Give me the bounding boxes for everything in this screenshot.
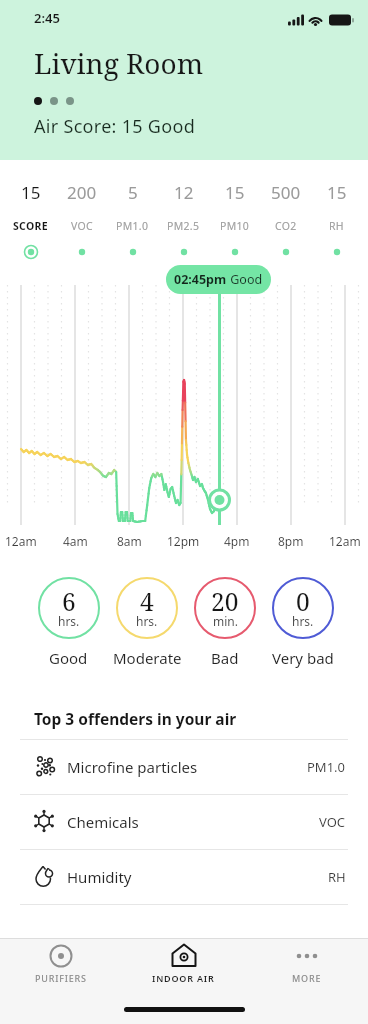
staticText: 5 (128, 181, 138, 204)
staticText: 15 (327, 181, 347, 204)
staticText: Chemicals (67, 812, 139, 832)
staticText: Very bad (272, 648, 334, 668)
staticText: CO2 (275, 219, 297, 233)
staticText: 02:45pm (174, 271, 227, 288)
staticText: PM2.5 (167, 219, 200, 233)
staticText: SCORE (13, 219, 48, 233)
staticText: 15 (225, 181, 245, 204)
staticText: PM1.0 (116, 219, 149, 233)
staticText: 12am (5, 533, 37, 549)
staticText: Top 3 offenders in your air (34, 708, 237, 729)
staticText: Good (227, 271, 263, 288)
staticText: MORE (292, 972, 322, 984)
staticText: hrs. (136, 613, 158, 629)
staticText: hrs. (292, 613, 314, 629)
staticText: PM10 (220, 219, 250, 233)
staticText: 12 (174, 181, 194, 204)
staticText: 500 (271, 181, 301, 204)
staticText: Moderate (113, 648, 182, 668)
staticText: 4am (63, 533, 88, 549)
staticText: 6 (62, 585, 76, 618)
staticText: RH (329, 219, 344, 233)
staticText: 20 (211, 585, 239, 618)
staticText: 12pm (167, 533, 200, 549)
staticText: Bad (211, 648, 239, 668)
staticText: VOC (319, 813, 346, 831)
staticText: 0 (296, 585, 310, 618)
staticText: PURIFIERS (35, 972, 87, 984)
staticText: RH (328, 868, 346, 886)
staticText: Microfine particles (67, 757, 198, 777)
staticText: INDOOR AIR (152, 972, 215, 984)
staticText: Living Room (34, 44, 204, 82)
staticText: VOC (71, 219, 93, 233)
staticText: PM1.0 (307, 758, 346, 776)
staticText: 15 (21, 181, 41, 204)
staticText: 8pm (278, 533, 304, 549)
staticText: 8am (117, 533, 142, 549)
staticText: Good (49, 648, 88, 668)
staticText: 4pm (224, 533, 250, 549)
staticText: Humidity (67, 867, 132, 887)
staticText: Air Score: 15 Good (34, 114, 196, 139)
staticText: min. (213, 613, 238, 629)
staticText: 12am (329, 533, 361, 549)
staticText: hrs. (58, 613, 80, 629)
staticText: 200 (67, 181, 97, 204)
staticText: 2:45 (34, 9, 60, 27)
staticText: 4 (140, 585, 154, 618)
